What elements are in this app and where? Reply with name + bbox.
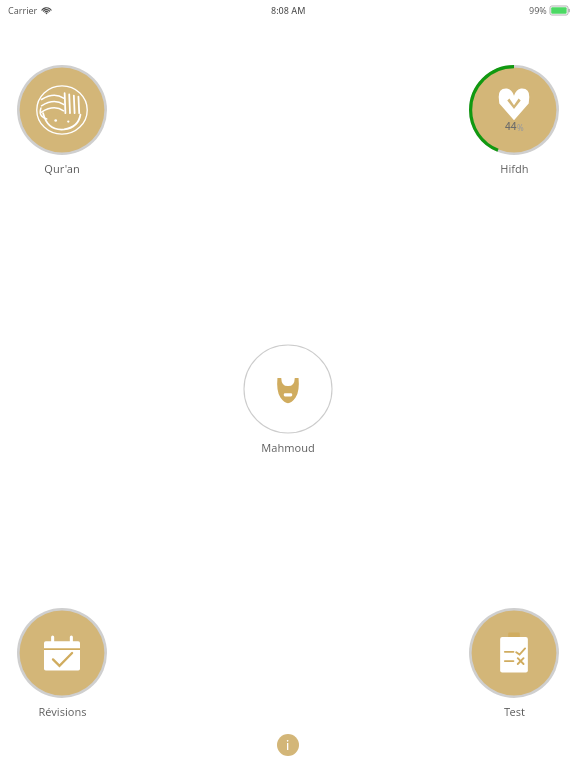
button[interactable]: Mahmoud [232,343,344,459]
button[interactable]: 44 [458,64,570,180]
staticText: Révisions [38,704,87,719]
staticText: 99% [529,4,547,16]
staticText: Carrier [8,4,38,16]
staticText: Test [504,704,525,719]
button[interactable]: Test [458,607,570,723]
staticText: Hifdh [500,161,529,176]
staticText: 8:08 AM [271,4,306,16]
staticText: Mahmoud [261,440,315,455]
staticText: i [286,737,290,753]
button[interactable]: Révisions [6,607,118,723]
staticText: Qur'an [44,161,80,176]
button[interactable]: Qur'an [6,64,118,180]
button[interactable]: Information [277,734,299,756]
staticText: 44 [505,119,517,133]
staticText: % [517,122,524,133]
